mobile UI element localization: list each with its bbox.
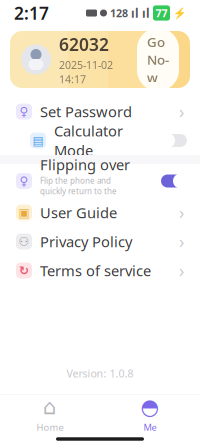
- button[interactable]: ♀: [0, 164, 200, 198]
- staticText: ıl: [142, 5, 150, 21]
- staticText: ıl: [131, 5, 139, 21]
- staticText: ▣: [18, 206, 29, 219]
- staticText: Home: [36, 421, 63, 433]
- button[interactable]: ♀: [0, 97, 200, 126]
- staticText: ›: [179, 100, 184, 123]
- button[interactable]: ◓: [100, 395, 200, 433]
- button[interactable]: 62032: [10, 31, 190, 88]
- button[interactable]: ⌂: [0, 395, 100, 433]
- staticText: ›: [179, 201, 184, 224]
- staticText: ⚡: [173, 7, 186, 19]
- staticText: Privacy Policy: [40, 232, 132, 251]
- staticText: 77: [155, 6, 167, 20]
- staticText: ↻: [19, 264, 29, 277]
- button[interactable]: ⚇: [0, 227, 200, 256]
- staticText: Version: 1.0.8: [66, 366, 133, 380]
- staticText: Terms of service: [40, 261, 151, 280]
- staticText: Calculator Mode: [54, 121, 123, 160]
- staticText: ›: [179, 259, 184, 282]
- staticText: ⚇: [18, 235, 29, 248]
- staticText: ›: [179, 230, 184, 253]
- staticText: User Guide: [40, 203, 117, 222]
- staticText: Go Now: [147, 33, 169, 86]
- staticText: ▤: [32, 134, 43, 147]
- staticText: 62032: [59, 33, 109, 56]
- staticText: ◓: [140, 395, 159, 419]
- staticText: ♀: [19, 174, 28, 188]
- button[interactable]: ↻: [0, 256, 200, 285]
- staticText: 2:17: [14, 1, 49, 24]
- staticText: 2025-11-02 14:17: [59, 58, 113, 86]
- staticText: ⌂: [43, 395, 57, 419]
- button[interactable]: ▣: [0, 198, 200, 227]
- staticText: ♀: [19, 105, 28, 118]
- staticText: Me: [143, 421, 156, 433]
- staticText: Flip the phone and quickly return to the…: [40, 175, 117, 207]
- staticText: Flipping over: [40, 155, 130, 174]
- staticText: 128: [110, 6, 128, 20]
- staticText: Set Password: [40, 102, 132, 121]
- button[interactable]: ▤: [0, 126, 200, 155]
